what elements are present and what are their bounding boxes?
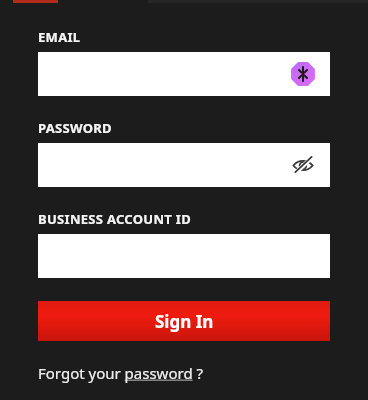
staticText: EMAIL — [38, 28, 81, 46]
staticText: Forgot your password ? — [38, 363, 204, 383]
button[interactable]: Show password — [38, 143, 330, 187]
button[interactable]: Passkey — [288, 59, 318, 89]
staticText: BUSINESS ACCOUNT ID — [38, 210, 191, 228]
staticText: Sign In — [155, 310, 214, 333]
staticText: PASSWORD — [38, 119, 112, 137]
button[interactable]: Show password — [288, 150, 318, 180]
button[interactable]: Passkey — [38, 52, 330, 96]
button[interactable]: Sign In — [38, 301, 330, 341]
button[interactable]: Forgot your password ? — [38, 361, 204, 385]
